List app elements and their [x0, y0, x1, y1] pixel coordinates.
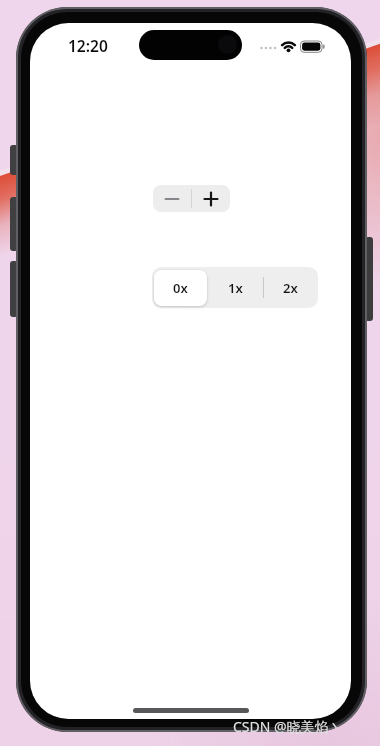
- button[interactable]: 0x: [154, 270, 207, 306]
- staticText: 0x: [173, 279, 188, 297]
- button[interactable]: 2x: [263, 270, 317, 306]
- staticText: CSDN @晓美焰丶: [233, 717, 343, 736]
- button[interactable]: [192, 185, 230, 212]
- button[interactable]: 1x: [208, 270, 262, 306]
- staticText: 1x: [228, 279, 243, 297]
- staticText: 12:20: [68, 35, 108, 53]
- staticText: 2x: [283, 279, 298, 297]
- button[interactable]: [153, 185, 191, 212]
